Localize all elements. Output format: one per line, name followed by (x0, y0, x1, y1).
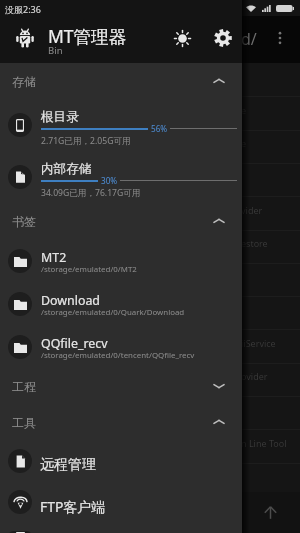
staticText: 书签 (12, 214, 36, 229)
button[interactable]: Download (0, 282, 242, 325)
button[interactable]: 书签 (0, 203, 242, 239)
staticText: /storage/emulated/0/tencent/QQfile_recv (41, 350, 195, 361)
staticText: ovider (241, 370, 268, 382)
staticText: MT管理器 (48, 24, 127, 48)
staticText: 56% (151, 123, 168, 134)
staticText: Bin (48, 44, 63, 57)
button[interactable]: 存储 (0, 63, 242, 99)
button[interactable]: QQfile_recv (0, 325, 242, 368)
staticText: vider (241, 204, 263, 216)
staticText: /storage/emulated/0/MT2 (41, 264, 137, 275)
staticText: 30% (101, 175, 118, 186)
staticText: MT2 (41, 249, 67, 266)
staticText: /storage/emulated/0/Quark/Download (41, 307, 185, 318)
button[interactable]: 远程管理 (0, 440, 242, 481)
staticText: estore (241, 237, 268, 249)
button[interactable]: 工具 (0, 404, 242, 440)
button[interactable]: Up one level (258, 500, 282, 524)
staticText: iiService (241, 337, 276, 349)
button[interactable]: More options (268, 26, 292, 50)
button[interactable]: Toggle theme (172, 28, 192, 48)
staticText: 工程 (12, 379, 36, 394)
button[interactable]: FTP客户端 (0, 481, 242, 522)
button[interactable]: MT2 (0, 239, 242, 282)
staticText: 存储 (12, 74, 36, 89)
staticText: 2.71G已用，2.05G可用 (41, 135, 131, 147)
button[interactable]: 内部存储 (0, 151, 242, 203)
button[interactable]: 文本编辑器 (0, 522, 242, 533)
staticText: 远程管理 (40, 456, 96, 474)
staticText: n Line Tool (241, 437, 287, 449)
staticText: 根目录 (41, 109, 79, 125)
staticText: 内部存储 (41, 161, 92, 177)
staticText: QQfile_recv (41, 335, 108, 352)
staticText: d/ (241, 28, 257, 50)
staticText: e (241, 104, 247, 116)
staticText: e (241, 137, 247, 149)
staticText: FTP客户端 (40, 497, 106, 516)
staticText: Download (41, 292, 100, 309)
button[interactable]: 根目录 (0, 99, 242, 151)
staticText: 没服2:36 (5, 3, 41, 15)
staticText: 工具 (12, 415, 36, 430)
staticText: 34.09G已用，76.17G可用 (41, 187, 141, 199)
button[interactable]: Settings (213, 28, 233, 48)
button[interactable]: 工程 (0, 368, 242, 404)
